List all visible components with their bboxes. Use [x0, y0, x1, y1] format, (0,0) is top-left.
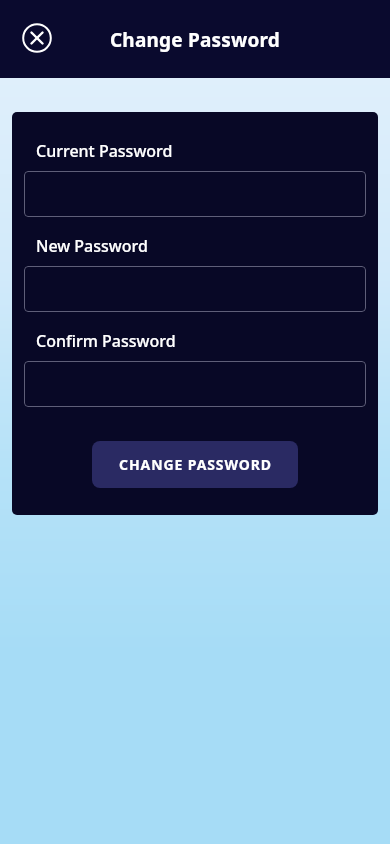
staticText: Change Password: [0, 27, 390, 53]
staticText: CHANGE PASSWORD: [119, 455, 272, 474]
staticText: New Password: [36, 235, 148, 257]
button[interactable]: [24, 171, 366, 217]
button[interactable]: [24, 361, 366, 407]
button[interactable]: CHANGE PASSWORD: [92, 441, 298, 488]
button[interactable]: [24, 266, 366, 312]
button[interactable]: Close: [18, 19, 56, 57]
staticText: Confirm Password: [36, 330, 176, 352]
staticText: Current Password: [36, 140, 173, 162]
